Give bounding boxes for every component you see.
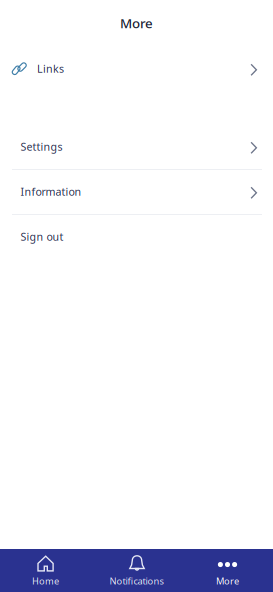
button[interactable]: More [182,549,273,592]
button[interactable]: Settings [0,124,273,169]
button[interactable]: More [0,0,273,46]
staticText: More [120,14,153,32]
staticText: Home [32,575,59,587]
button[interactable]: Links [0,46,273,91]
staticText: Notifications [109,575,163,587]
staticText: Links [37,61,64,76]
button[interactable]: Sign out [0,214,273,259]
staticText: Sign out [20,229,63,244]
staticText: Information [20,184,81,199]
button[interactable]: Information [0,169,273,214]
button[interactable]: Home [0,549,91,592]
staticText: Settings [20,139,62,154]
staticText: More [216,575,239,587]
button[interactable]: Notifications [91,549,182,592]
